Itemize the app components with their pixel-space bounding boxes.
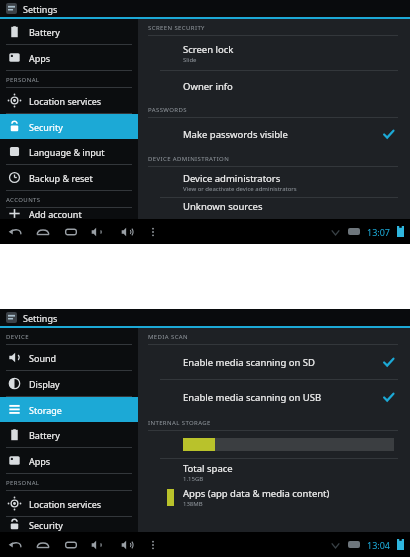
staticText: SCREEN SECURITY [148,24,205,32]
button[interactable]: Battery [0,19,138,44]
staticText: Display [29,378,60,390]
button[interactable]: Enable media scanning on SD [138,345,410,379]
staticText: Language & input [29,146,105,158]
button[interactable]: Back [6,536,24,554]
staticText: Security [29,519,63,531]
staticText: Add account [29,208,82,219]
staticText: Storage [29,404,62,416]
button[interactable]: Battery [0,422,138,447]
staticText: MEDIA SCAN [148,333,189,341]
staticText: Sound [29,352,57,364]
staticText: ACCOUNTS [6,196,41,204]
button[interactable]: Back [6,223,24,241]
button[interactable]: Language & input [0,139,138,164]
button[interactable]: Apps [0,45,138,70]
staticText: Unknown sources [183,200,263,213]
button[interactable]: More options [144,536,162,554]
staticText: Settings [23,312,58,324]
staticText: Owner info [183,80,233,93]
button[interactable]: More options [144,223,162,241]
staticText: 13:07 [367,226,391,238]
staticText: Device administrators [183,172,281,185]
button[interactable]: Security [0,114,138,139]
staticText: Location services [29,95,102,107]
button[interactable]: Device administrators [138,167,410,197]
button[interactable]: Recent apps [62,223,80,241]
button[interactable]: Make passwords visible [138,118,410,150]
button[interactable]: Display [0,371,138,396]
staticText: Screen lock [183,43,234,56]
button[interactable]: Total space [138,459,410,485]
staticText: DEVICE ADMINISTRATION [148,155,230,163]
button[interactable]: Home [34,223,52,241]
button[interactable]: Owner info [138,71,410,101]
staticText: PERSONAL [6,76,40,84]
button[interactable]: Sound [0,345,138,370]
staticText: Backup & reset [29,172,93,184]
staticText: Apps (app data & media content) [183,487,330,500]
staticText: PASSWORDS [148,106,187,114]
button[interactable]: Enable media scanning on USB [138,380,410,414]
staticText: Apps [29,52,51,64]
button[interactable]: Volume down [88,223,106,241]
button[interactable]: Apps [0,448,138,473]
staticText: Enable media scanning on USB [183,391,322,404]
button[interactable]: Home [34,536,52,554]
staticText: Slide [183,56,197,64]
staticText: 13:04 [367,539,391,551]
button[interactable]: Add account [0,208,138,219]
button[interactable]: Location services [0,88,138,113]
staticText: 138MB [183,500,203,508]
staticText: Settings [23,3,58,15]
staticText: Battery [29,429,60,441]
button[interactable]: Volume up [118,223,136,241]
staticText: Security [29,121,63,133]
staticText: Enable media scanning on SD [183,356,315,369]
staticText: Battery [29,26,60,38]
button[interactable]: Recent apps [62,536,80,554]
other: Wi-Fi [331,540,340,549]
button[interactable]: Storage [0,397,138,422]
staticText: INTERNAL STORAGE [148,419,211,427]
staticText: Apps [29,455,51,467]
staticText: Make passwords visible [183,128,288,141]
button[interactable]: Volume up [118,536,136,554]
staticText: View or deactivate device administrators [183,185,297,193]
button[interactable]: Location services [0,491,138,516]
staticText: Total space [183,462,233,475]
staticText: DEVICE [6,333,29,341]
other: Wi-Fi [331,227,340,236]
staticText: PERSONAL [6,479,40,487]
button[interactable]: Volume down [88,536,106,554]
button[interactable]: Security [0,517,138,532]
staticText: 1.15GB [183,475,204,483]
button[interactable]: Screen lock [138,36,410,70]
staticText: Location services [29,498,102,510]
button[interactable]: Backup & reset [0,165,138,190]
button[interactable]: Apps (app data & media content) [138,485,410,508]
